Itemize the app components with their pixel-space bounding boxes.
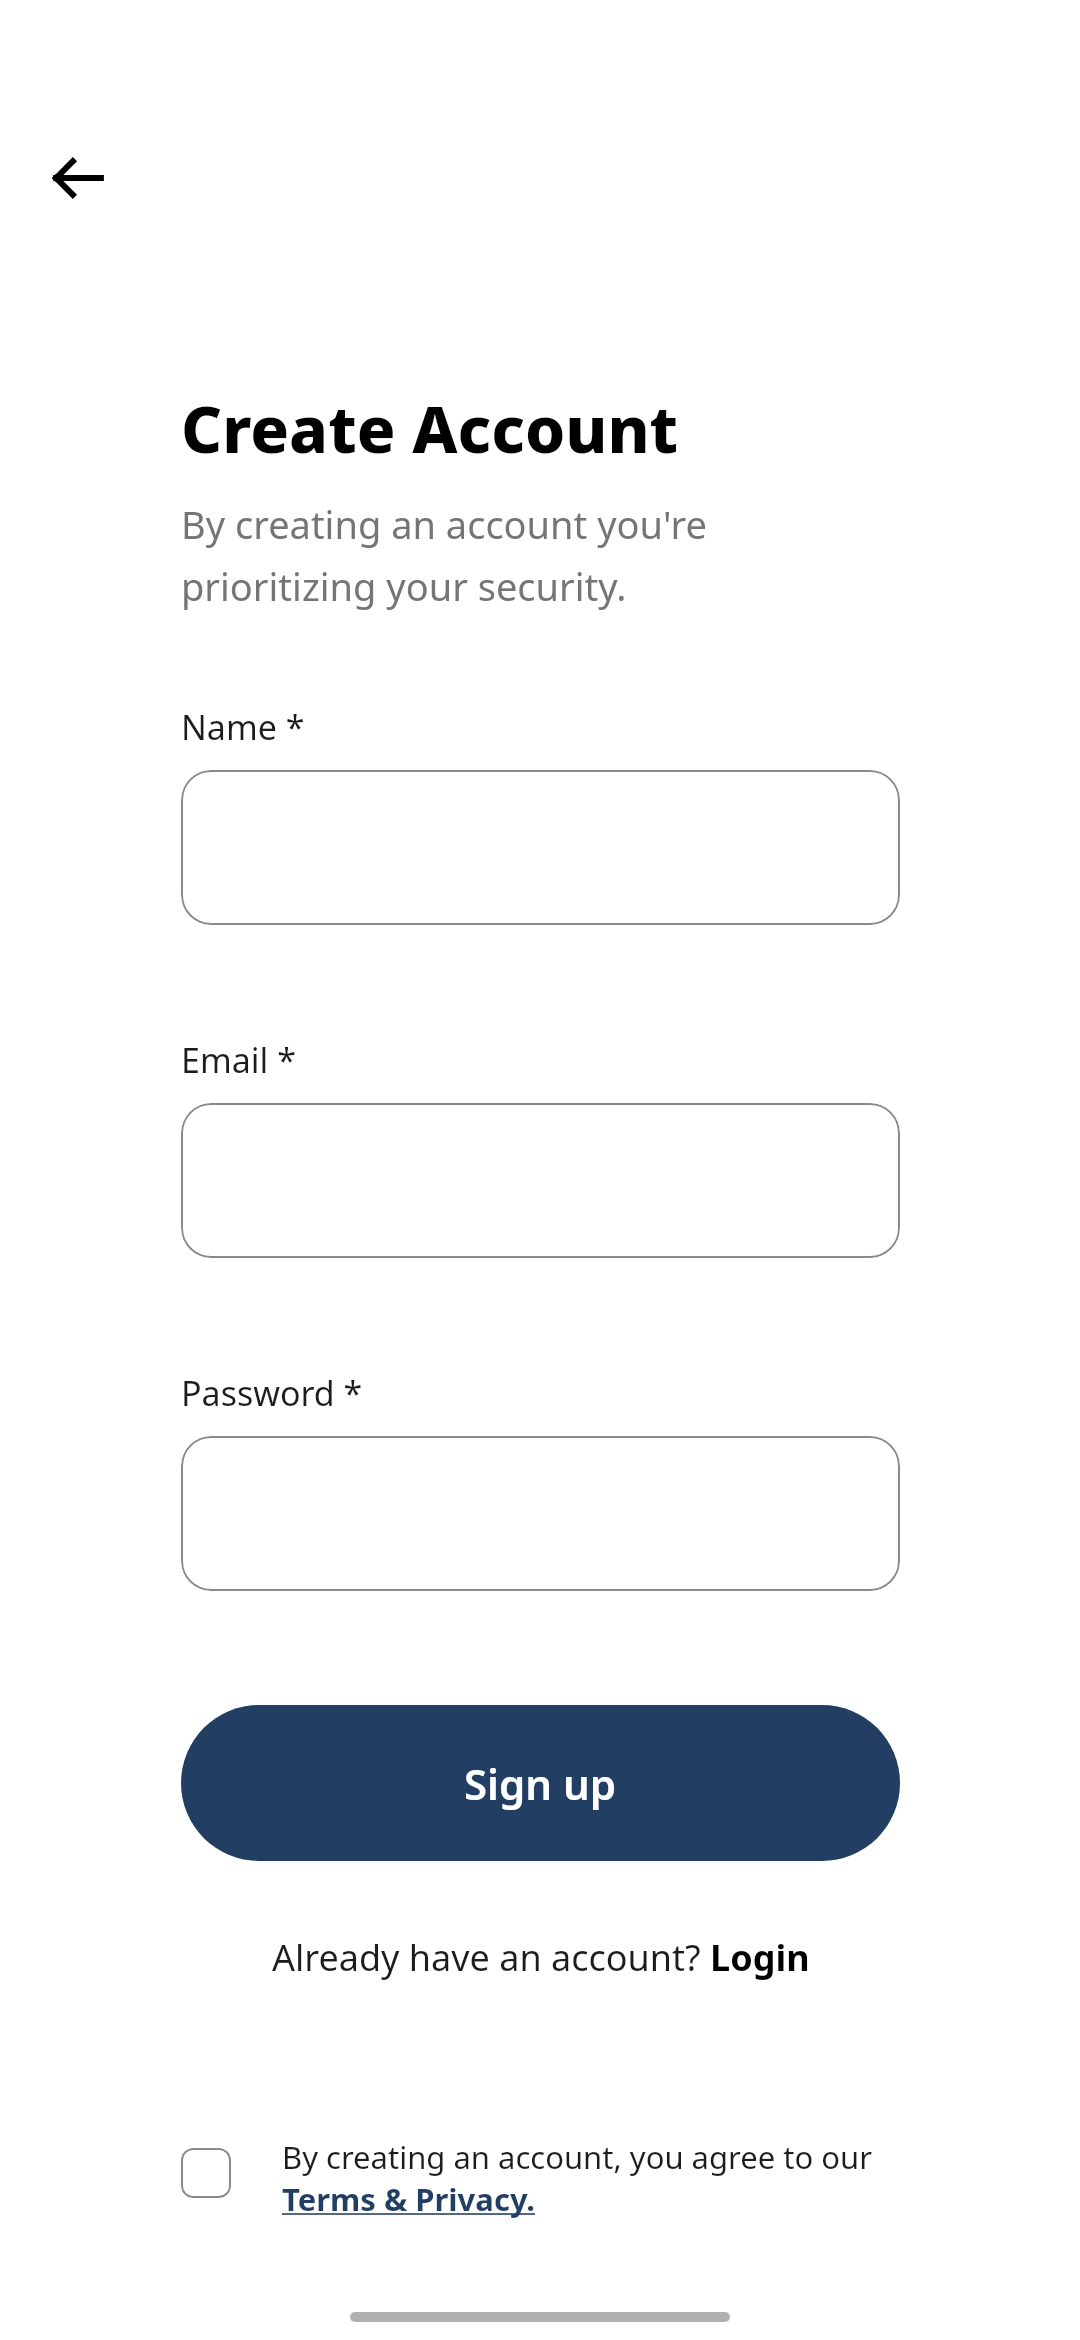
staticText: Sign up	[464, 1755, 617, 1812]
button[interactable]: Sign up	[181, 1705, 900, 1861]
button[interactable]: Name *	[181, 770, 900, 925]
button[interactable]: Password *	[181, 1436, 900, 1591]
button[interactable]: Back	[34, 134, 122, 222]
staticText: Password *	[181, 1370, 363, 1416]
staticText: Create Account	[181, 385, 679, 472]
button[interactable]: Agree to terms checkbox	[181, 2148, 231, 2198]
staticText: Already have an account? Login	[272, 1933, 810, 1982]
staticText: By creating an account you're prioritizi…	[181, 498, 707, 612]
staticText: Email *	[181, 1037, 296, 1083]
staticText: By creating an account, you agree to our	[282, 2136, 872, 2178]
staticText: Terms & Privacy.	[282, 2178, 536, 2220]
button[interactable]: Email *	[181, 1103, 900, 1258]
button[interactable]: Already have an account? Login	[264, 1927, 818, 1988]
button[interactable]: Terms & Privacy.	[282, 2178, 536, 2220]
staticText: Name *	[181, 704, 305, 750]
